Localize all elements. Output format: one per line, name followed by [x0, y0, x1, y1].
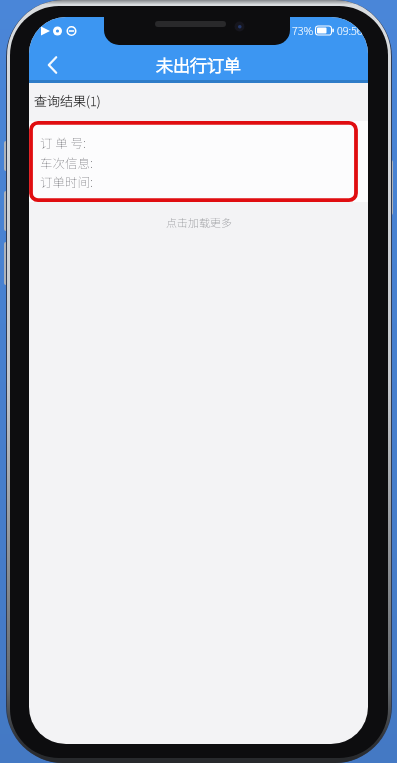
staticText: 未出行订单 — [156, 52, 241, 77]
staticText: 订单时间: — [40, 172, 93, 190]
staticText: 09:56 — [337, 22, 363, 38]
staticText: 车次信息: — [40, 153, 93, 171]
staticText: 73% — [292, 22, 314, 38]
button[interactable]: 订 单 号: — [29, 121, 368, 202]
staticText: 查询结果(1) — [34, 91, 101, 110]
staticText: 订 单 号: — [40, 133, 86, 151]
staticText: 未出行订单 — [156, 52, 241, 77]
staticText: 查询结果(1) — [34, 91, 101, 110]
button[interactable] — [29, 46, 75, 83]
button[interactable]: 点击加载更多 — [166, 214, 232, 230]
